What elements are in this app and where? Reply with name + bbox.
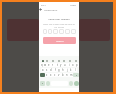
staticText: u [64,63,66,67]
button[interactable]: u [63,63,67,67]
staticText: d [50,68,52,72]
staticText: n [66,73,68,77]
staticText: e [48,63,50,67]
staticText: s [46,68,48,72]
staticText: q [41,63,43,67]
button[interactable]: n [65,73,69,77]
staticText: 9:41 [41,3,46,6]
button[interactable]: Emoji [42,60,44,62]
button[interactable]: j [65,68,69,72]
button[interactable]: z [45,73,49,77]
button[interactable]: r [51,63,55,67]
button[interactable]: w [43,63,47,67]
button[interactable]: Backspace [73,73,79,77]
staticText: v [58,73,60,77]
staticText: t [57,63,58,67]
staticText: z [46,73,48,77]
button[interactable]: Enter [74,81,79,86]
button[interactable]: v [57,73,61,77]
button[interactable]: Symbols [40,81,45,86]
button[interactable]: k [69,68,73,72]
staticText: Verification [44,8,58,11]
button[interactable]: i [67,63,71,67]
button[interactable]: g [57,68,61,72]
staticText: b [62,73,64,77]
button[interactable]: Verification [44,7,58,11]
staticText: j [67,68,68,72]
button[interactable]: o [71,63,75,67]
staticText: h [62,68,64,72]
staticText: i [69,63,70,67]
button[interactable]: f [53,68,57,72]
staticText: p [76,63,78,67]
staticText: Verify your number [39,18,79,21]
staticText: o [72,63,74,67]
button[interactable]: y [59,63,63,67]
button[interactable]: Comma [46,81,50,86]
button[interactable]: h [61,68,65,72]
staticText: VERIFY [56,39,64,42]
button[interactable]: x [49,73,53,77]
button[interactable]: e [47,63,51,67]
button[interactable]: l [73,68,77,72]
staticText: r [52,63,54,67]
staticText: w [44,63,47,67]
staticText: y [60,63,62,67]
button[interactable] [43,29,47,34]
button[interactable]: b [61,73,65,77]
button[interactable] [65,29,70,34]
staticText: c [54,73,56,77]
staticText: l [75,68,76,72]
staticText: Enter the 6 digit code we sent to +91 98… [40,23,78,29]
button[interactable]: m [69,73,73,77]
button[interactable] [53,29,58,34]
button[interactable]: Back [39,8,42,11]
staticText: k [70,68,72,72]
staticText: g [58,68,60,72]
button[interactable]: p [75,63,79,67]
button[interactable] [71,29,76,34]
button[interactable]: Shift [40,73,45,77]
button[interactable]: d [49,68,53,72]
button[interactable]: Period [69,81,73,86]
staticText: f [55,68,56,72]
button[interactable] [48,29,52,34]
staticText: a [42,68,44,72]
button[interactable]: s [45,68,49,72]
staticText: m [70,73,73,77]
button[interactable]: t [55,63,59,67]
button[interactable]: q [40,63,43,67]
staticText: 100% [70,3,77,6]
staticText: x [50,73,52,77]
button[interactable] [59,29,64,34]
button[interactable]: c [53,73,57,77]
button[interactable]: a [41,68,45,72]
button[interactable]: VERIFY [43,37,76,44]
